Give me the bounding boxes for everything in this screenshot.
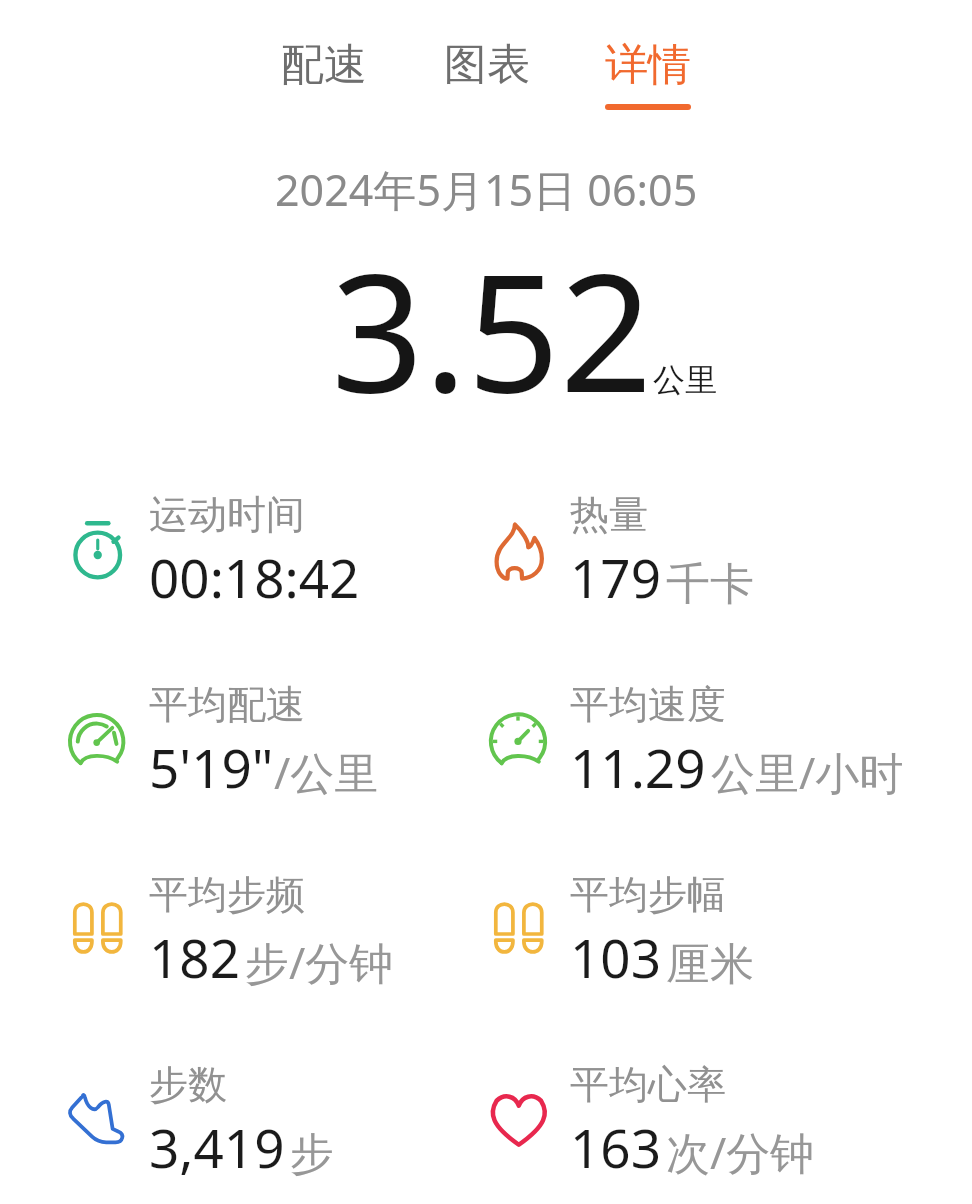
button[interactable]: 热量 xyxy=(487,492,927,617)
staticText: 平均配速 xyxy=(149,680,305,729)
other: 平均步频 xyxy=(66,903,128,965)
staticText: 厘米 xyxy=(666,937,754,992)
staticText: 公里 xyxy=(653,360,717,400)
staticText: 00:18:42 xyxy=(149,541,360,613)
button[interactable]: 步数 xyxy=(66,1062,506,1187)
other: 运动时间 xyxy=(66,523,128,585)
button[interactable]: 详情 xyxy=(578,38,718,110)
staticText: 步数 xyxy=(149,1060,227,1109)
staticText: 163 xyxy=(570,1111,661,1183)
staticText: 步/分钟 xyxy=(245,932,394,992)
staticText: 热量 xyxy=(570,490,648,539)
button[interactable]: 平均步幅 xyxy=(487,872,927,997)
staticText: 图表 xyxy=(444,38,530,92)
button[interactable]: 配速 xyxy=(254,38,394,104)
staticText: 11.29 xyxy=(570,731,706,803)
button[interactable]: 平均速度 xyxy=(487,682,927,807)
staticText: 182 xyxy=(149,921,240,993)
staticText: 5'19" xyxy=(149,731,274,803)
staticText: 179 xyxy=(570,541,661,613)
staticText: 2024年5月15日 06:05 xyxy=(275,160,698,219)
other: 平均配速 xyxy=(66,713,128,775)
staticText: 平均步幅 xyxy=(570,870,726,919)
staticText: 配速 xyxy=(281,38,367,92)
staticText: 103 xyxy=(570,921,661,993)
other: 步数 xyxy=(66,1093,128,1155)
staticText: 次/分钟 xyxy=(666,1122,815,1182)
other: 热量 xyxy=(487,523,549,585)
staticText: 运动时间 xyxy=(149,490,305,539)
button[interactable]: 平均心率 xyxy=(487,1062,927,1187)
staticText: 平均步频 xyxy=(149,870,305,919)
staticText: /公里 xyxy=(274,742,379,802)
staticText: 3,419 xyxy=(149,1111,285,1183)
other: 平均速度 xyxy=(487,713,549,775)
staticText: 公里/小时 xyxy=(711,742,904,802)
other: 平均步幅 xyxy=(487,903,549,965)
staticText: 平均速度 xyxy=(570,680,726,729)
staticText: 详情 xyxy=(605,38,691,92)
button[interactable]: 图表 xyxy=(417,38,557,104)
staticText: 步 xyxy=(290,1127,334,1182)
other: 平均心率 xyxy=(487,1093,549,1155)
staticText: 千卡 xyxy=(666,557,754,612)
button[interactable]: 平均配速 xyxy=(66,682,506,807)
staticText: 平均心率 xyxy=(570,1060,726,1109)
button[interactable]: 平均步频 xyxy=(66,872,506,997)
button[interactable]: 运动时间 xyxy=(66,492,506,617)
staticText: 3.52 xyxy=(331,219,653,440)
